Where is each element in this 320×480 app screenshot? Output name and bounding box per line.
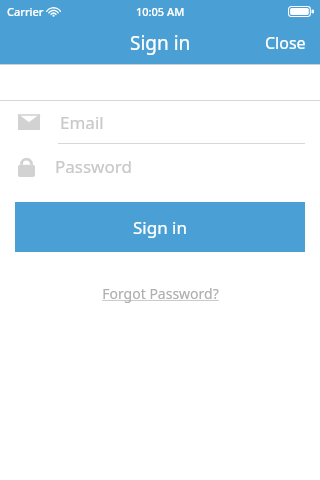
other: Email (18, 115, 40, 130)
button[interactable]: Forgot Password? (92, 280, 229, 307)
staticText: Forgot Password? (102, 284, 219, 303)
staticText: 10:05 AM (136, 4, 185, 19)
staticText: Sign in (130, 30, 191, 56)
staticText: Close (265, 32, 306, 54)
staticText: Password (55, 155, 132, 178)
button[interactable]: Email (0, 101, 320, 143)
staticText: Sign in (133, 216, 187, 239)
staticText: Carrier (7, 4, 44, 19)
staticText: Email (60, 111, 104, 134)
other: Wi-Fi signal (48, 7, 59, 16)
button[interactable]: Close (251, 24, 320, 62)
other: Battery full (288, 6, 314, 17)
button[interactable]: Sign in (15, 202, 305, 252)
button[interactable]: Password (0, 144, 320, 188)
other: Password (18, 156, 35, 177)
